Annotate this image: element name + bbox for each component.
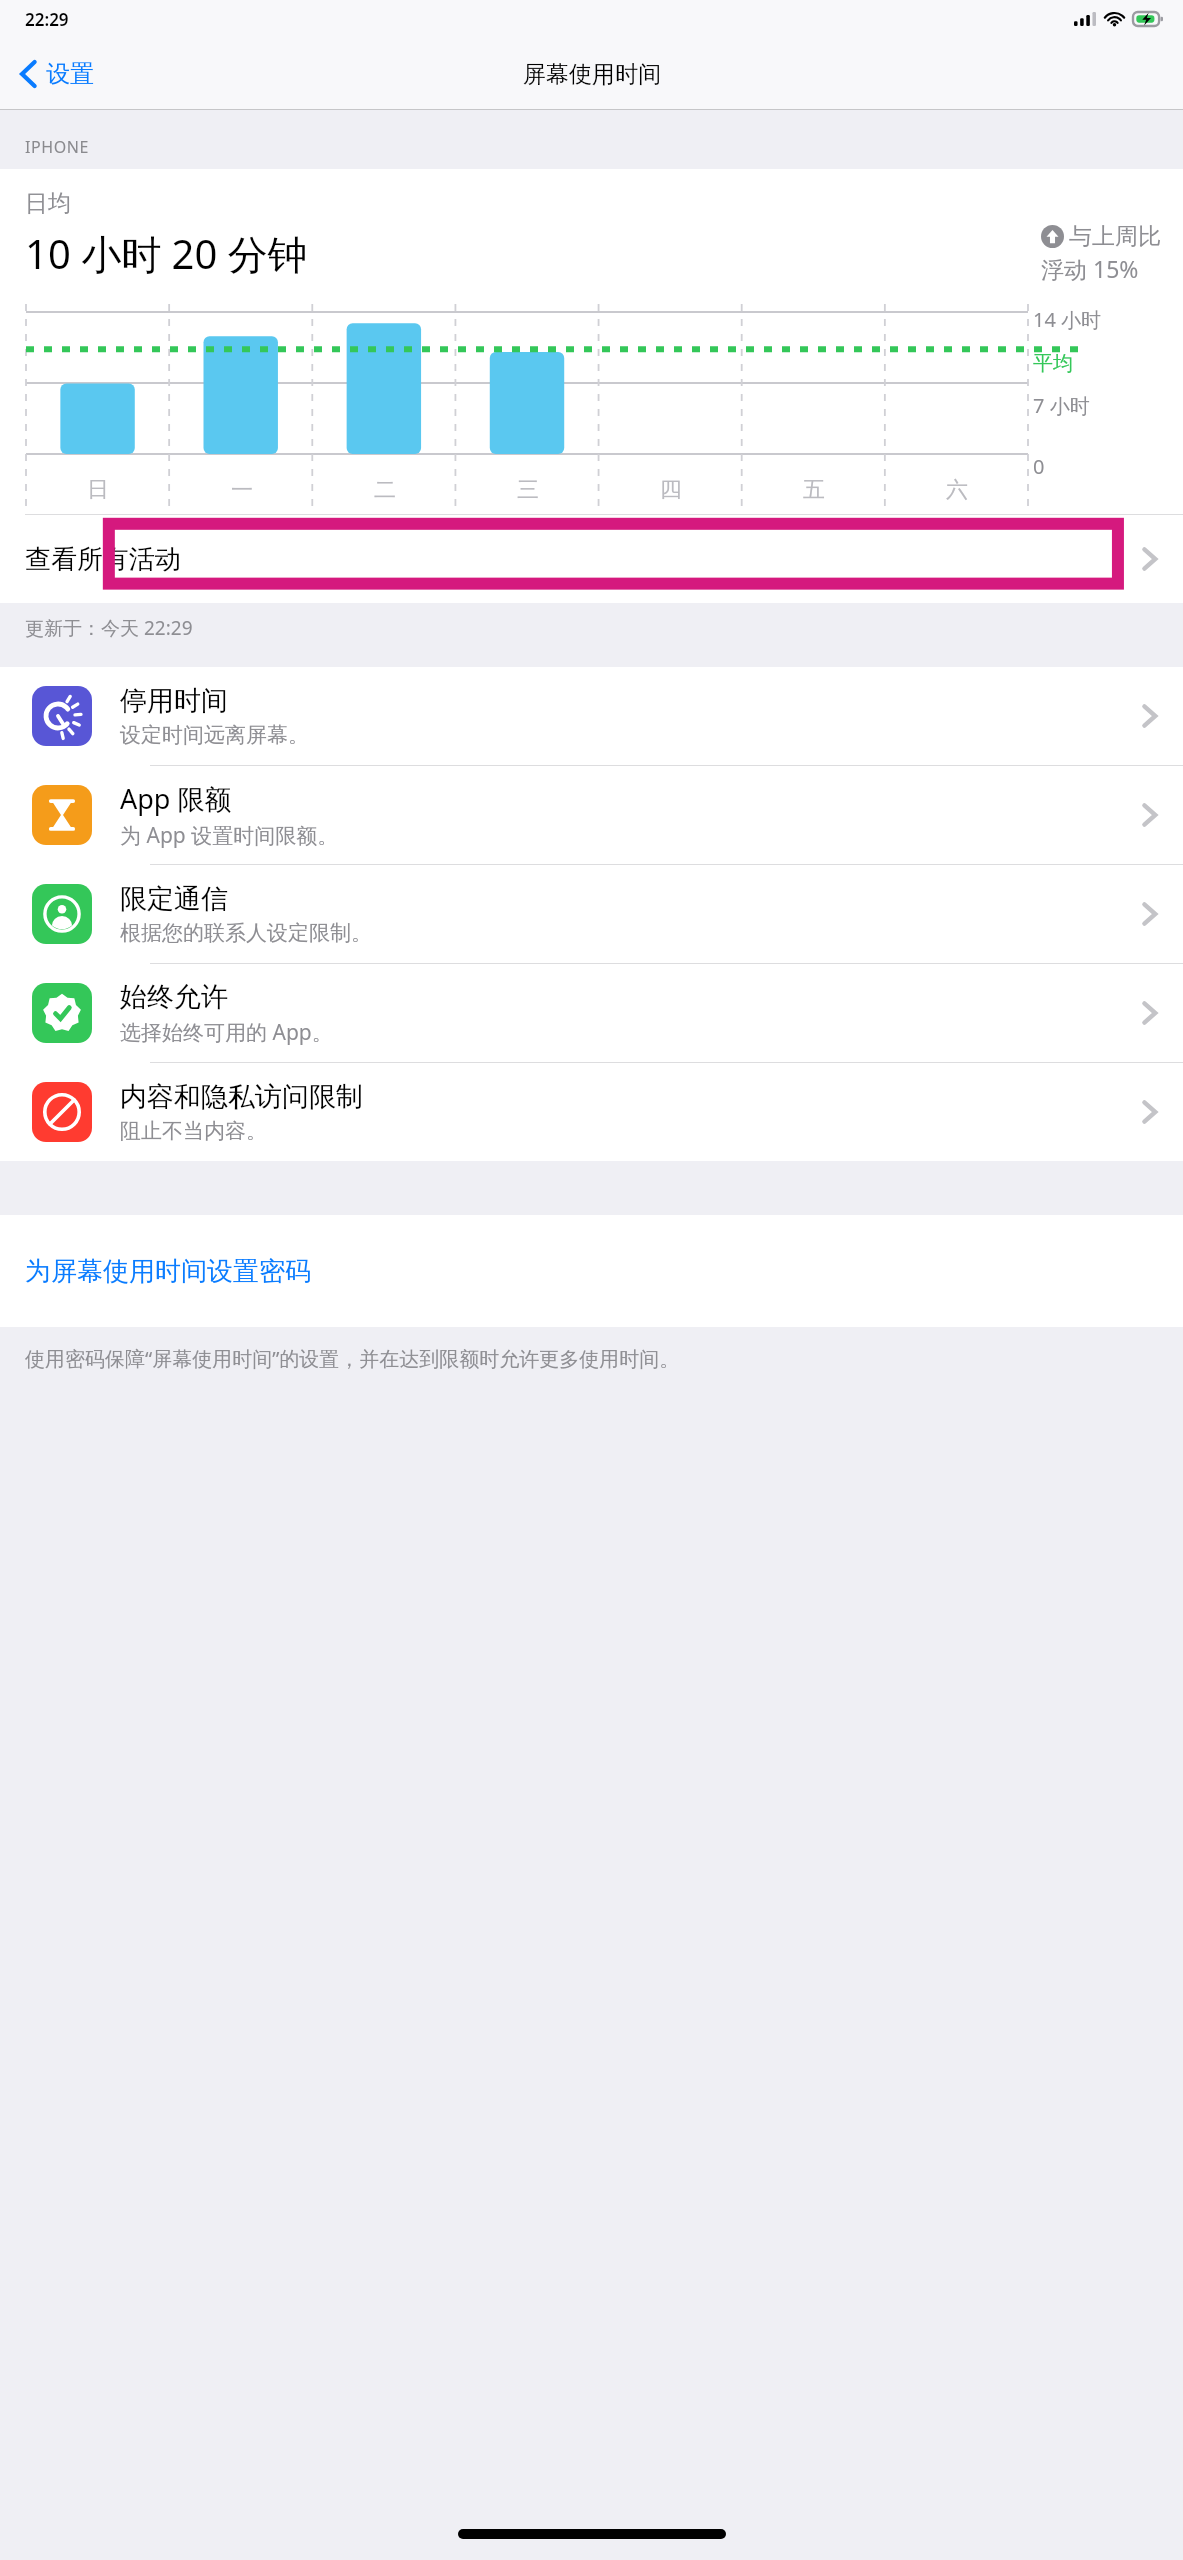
staticText: 14 小时 bbox=[1033, 306, 1102, 333]
staticText: 六 bbox=[946, 476, 968, 504]
staticText: 内容和隐私访问限制 bbox=[120, 1080, 363, 1114]
staticText: 与上周比 bbox=[1069, 222, 1161, 251]
staticText: 浮动 15% bbox=[1041, 253, 1139, 284]
staticText: 根据您的联系人设定限制。 bbox=[120, 920, 372, 946]
staticText: 一 bbox=[231, 476, 253, 504]
staticText: 选择始终可用的 App。 bbox=[120, 1018, 333, 1047]
button[interactable]: 限定通信 bbox=[0, 865, 1183, 963]
staticText: 10 小时 20 分钟 bbox=[25, 226, 308, 281]
button[interactable]: 设置 bbox=[0, 49, 112, 99]
button[interactable]: App 限额 bbox=[0, 766, 1183, 864]
staticText: 平均 bbox=[1033, 351, 1073, 376]
staticText: 为 App 设置时间限额。 bbox=[120, 821, 339, 850]
button[interactable]: 停用时间 bbox=[0, 667, 1183, 765]
button[interactable]: 为屏幕使用时间设置密码 bbox=[0, 1215, 1183, 1327]
staticText: IPHONE bbox=[25, 136, 90, 158]
staticText: 查看所有活动 bbox=[25, 543, 181, 576]
staticText: 22:29 bbox=[25, 8, 69, 31]
staticText: 为屏幕使用时间设置密码 bbox=[25, 1255, 311, 1288]
staticText: 停用时间 bbox=[120, 684, 228, 718]
staticText: 7 小时 bbox=[1033, 392, 1090, 419]
staticText: 日 bbox=[87, 476, 109, 504]
staticText: 二 bbox=[374, 476, 396, 504]
staticText: 0 bbox=[1033, 453, 1045, 480]
staticText: App 限额 bbox=[120, 780, 232, 817]
staticText: 四 bbox=[660, 476, 682, 504]
staticText: 日均 bbox=[25, 189, 71, 218]
button[interactable]: 内容和隐私访问限制 bbox=[0, 1063, 1183, 1161]
staticText: 设定时间远离屏幕。 bbox=[120, 722, 309, 748]
staticText: 始终允许 bbox=[120, 980, 228, 1014]
button[interactable]: 始终允许 bbox=[0, 964, 1183, 1062]
staticText: 屏幕使用时间 bbox=[523, 60, 661, 89]
button[interactable]: 查看所有活动 bbox=[0, 515, 1183, 603]
staticText: 阻止不当内容。 bbox=[120, 1118, 267, 1144]
staticText: 更新于：今天 22:29 bbox=[25, 615, 193, 641]
staticText: 限定通信 bbox=[120, 882, 228, 916]
staticText: 使用密码保障“屏幕使用时间”的设置，并在达到限额时允许更多使用时间。 bbox=[25, 1345, 680, 1372]
staticText: 五 bbox=[803, 476, 825, 504]
staticText: 设置 bbox=[46, 59, 94, 89]
staticText: 三 bbox=[517, 476, 539, 504]
